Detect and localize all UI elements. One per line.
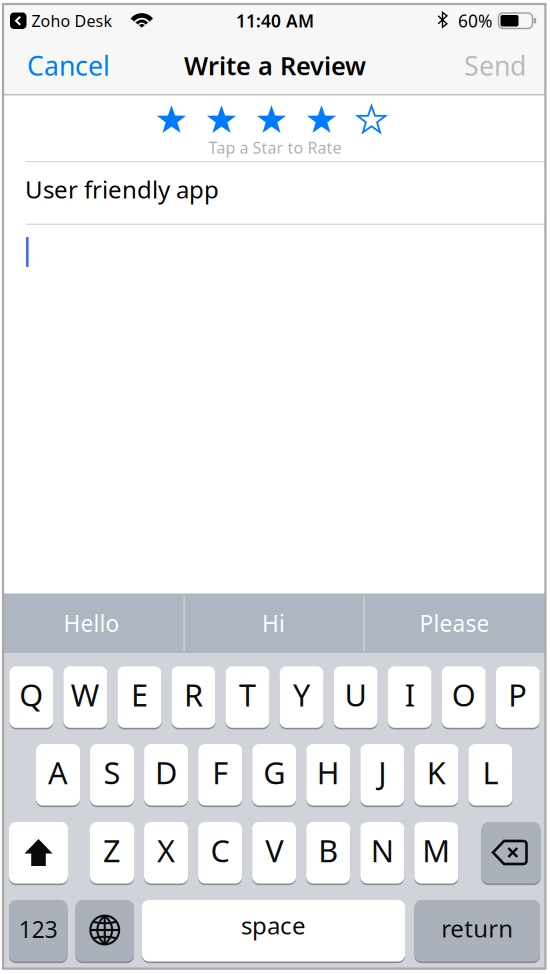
button[interactable]: D bbox=[144, 744, 188, 805]
staticText: Cancel bbox=[27, 48, 110, 83]
button[interactable]: Z bbox=[90, 822, 134, 883]
button[interactable] bbox=[75, 900, 134, 961]
staticText: Please bbox=[419, 608, 489, 638]
button[interactable] bbox=[253, 102, 289, 138]
staticText: return bbox=[441, 912, 513, 944]
staticText: Send bbox=[464, 48, 526, 83]
staticText: H bbox=[317, 752, 340, 793]
button[interactable] bbox=[4, 225, 545, 593]
staticText: Y bbox=[293, 674, 310, 715]
button[interactable]: Y bbox=[280, 666, 324, 728]
staticText: G bbox=[263, 752, 285, 793]
staticText: Hi bbox=[262, 608, 285, 638]
button[interactable]: B bbox=[306, 822, 350, 883]
button[interactable]: return bbox=[414, 900, 540, 961]
staticText: U bbox=[345, 674, 367, 715]
staticText: Z bbox=[103, 830, 121, 871]
button[interactable]: J bbox=[360, 744, 404, 805]
staticText: R bbox=[184, 674, 203, 715]
staticText: Tap a Star to Rate bbox=[208, 137, 341, 158]
staticText: I bbox=[405, 674, 415, 715]
staticText: D bbox=[155, 752, 177, 793]
button[interactable]: Cancel bbox=[27, 48, 147, 82]
button[interactable] bbox=[303, 102, 339, 138]
button[interactable]: C bbox=[198, 822, 242, 883]
button[interactable]: X bbox=[144, 822, 188, 883]
button[interactable]: N bbox=[360, 822, 404, 883]
button[interactable]: A bbox=[36, 744, 80, 805]
staticText: K bbox=[427, 752, 446, 793]
button[interactable]: User friendly app bbox=[4, 163, 545, 223]
button[interactable] bbox=[153, 102, 189, 138]
staticText: T bbox=[239, 674, 256, 715]
staticText: B bbox=[318, 830, 338, 871]
staticText: J bbox=[378, 752, 386, 793]
button[interactable]: O bbox=[442, 666, 486, 728]
staticText: S bbox=[103, 752, 120, 793]
staticText: User friendly app bbox=[25, 173, 219, 205]
button[interactable]: V bbox=[252, 822, 296, 883]
staticText: 123 bbox=[19, 914, 58, 944]
staticText: N bbox=[371, 830, 394, 871]
button[interactable]: Zoho Desk bbox=[10, 11, 191, 31]
staticText: Zoho Desk bbox=[31, 10, 112, 31]
button[interactable]: G bbox=[252, 744, 296, 805]
button[interactable]: K bbox=[414, 744, 458, 805]
staticText: O bbox=[452, 674, 476, 715]
button[interactable]: T bbox=[225, 666, 269, 728]
staticText: Q bbox=[19, 674, 43, 715]
button[interactable]: Hello bbox=[2, 593, 181, 653]
button[interactable]: P bbox=[496, 666, 540, 728]
staticText: 60% bbox=[458, 9, 492, 32]
button[interactable]: E bbox=[117, 666, 161, 728]
staticText: C bbox=[211, 830, 230, 871]
button[interactable]: Send bbox=[406, 48, 526, 82]
button[interactable]: I bbox=[388, 666, 432, 728]
button[interactable]: Hi bbox=[184, 593, 363, 653]
staticText: L bbox=[482, 752, 498, 793]
staticText: Hello bbox=[63, 608, 119, 638]
button[interactable]: M bbox=[414, 822, 458, 883]
staticText: 11:40 AM bbox=[236, 9, 314, 32]
button[interactable]: space bbox=[142, 900, 405, 961]
button[interactable]: H bbox=[306, 744, 350, 805]
staticText: M bbox=[422, 830, 450, 871]
button[interactable] bbox=[481, 822, 540, 883]
button[interactable]: W bbox=[63, 666, 107, 728]
staticText: space bbox=[241, 909, 306, 941]
staticText: X bbox=[157, 830, 175, 871]
button[interactable]: L bbox=[468, 744, 512, 805]
button[interactable]: U bbox=[334, 666, 378, 728]
button[interactable]: Please bbox=[365, 593, 544, 653]
staticText: W bbox=[71, 674, 100, 715]
button[interactable]: R bbox=[171, 666, 215, 728]
button[interactable]: S bbox=[90, 744, 134, 805]
staticText: Write a Review bbox=[184, 49, 366, 82]
button[interactable] bbox=[203, 102, 239, 138]
button[interactable]: 123 bbox=[9, 900, 67, 961]
staticText: P bbox=[508, 674, 527, 715]
button[interactable]: Q bbox=[9, 666, 53, 728]
staticText: V bbox=[265, 830, 283, 871]
button[interactable] bbox=[353, 102, 389, 138]
staticText: E bbox=[131, 674, 148, 715]
button[interactable] bbox=[9, 822, 68, 883]
staticText: F bbox=[212, 752, 228, 793]
staticText: A bbox=[48, 752, 68, 793]
button[interactable]: F bbox=[198, 744, 242, 805]
